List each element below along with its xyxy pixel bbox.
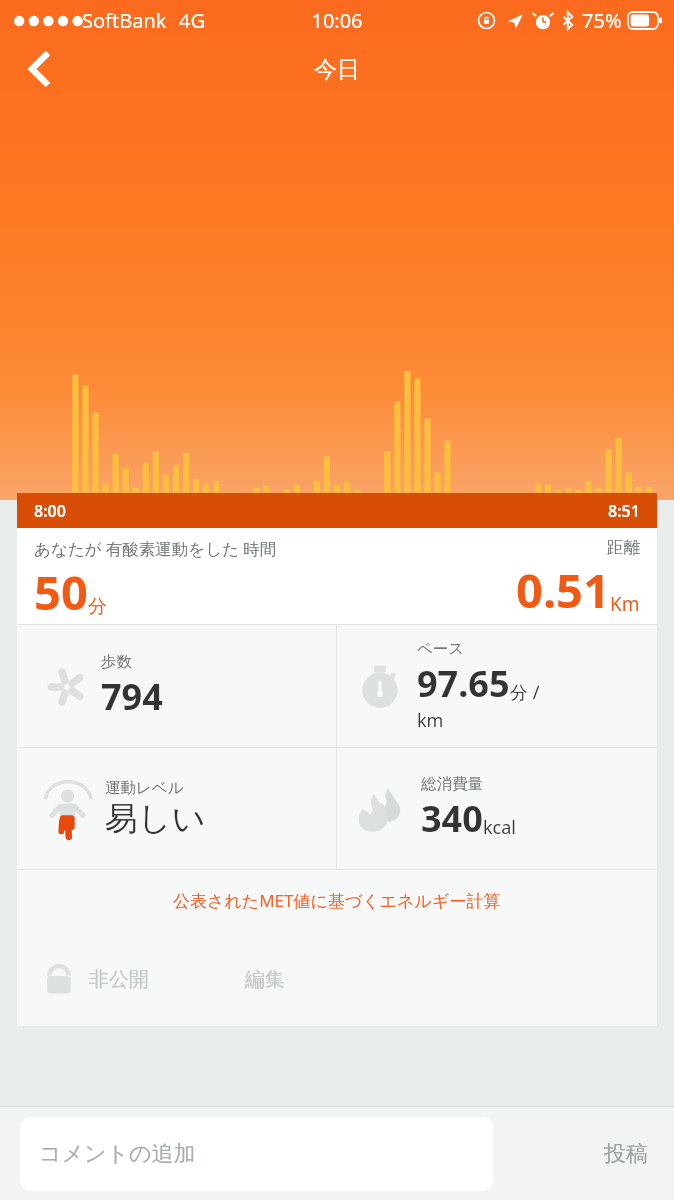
staticText: 投稿 (604, 1140, 648, 1168)
staticText: 8:00 (34, 500, 66, 522)
staticText: 0.51 (516, 558, 610, 622)
staticText: 距離 (607, 537, 640, 558)
staticText: ペース (417, 639, 465, 659)
button[interactable]: 総消費量 (337, 748, 657, 869)
staticText: 4G (179, 7, 205, 34)
staticText: km (417, 708, 444, 733)
staticText: 歩数 (101, 652, 132, 672)
staticText: 97.65 (417, 659, 510, 708)
staticText: 50 (34, 560, 88, 624)
staticText: 公表されたMET値に基づくエネルギー計算 (173, 889, 501, 912)
staticText: Km (610, 591, 640, 617)
staticText: 340 (421, 794, 483, 843)
button[interactable]: 運動レベル (17, 748, 336, 869)
button[interactable]: 公表されたMET値に基づくエネルギー計算 (17, 870, 657, 930)
button[interactable]: Back (12, 42, 66, 96)
button[interactable]: 編集 (245, 967, 285, 992)
staticText: SoftBank (82, 7, 167, 34)
staticText: 794 (101, 672, 163, 721)
staticText: 8:51 (608, 500, 640, 522)
staticText: 75% (582, 7, 622, 34)
staticText: 易しい (105, 798, 206, 840)
button[interactable]: ペース (337, 625, 657, 747)
button[interactable]: 非公開 (40, 960, 149, 998)
button[interactable]: 投稿 (604, 1140, 648, 1168)
staticText: 今日 (314, 55, 360, 84)
staticText: kcal (483, 815, 516, 840)
staticText: あなたが 有酸素運動をした 時間 (34, 537, 277, 560)
staticText: 運動レベル (105, 778, 184, 798)
button[interactable]: コメントの追加 (20, 1117, 493, 1191)
staticText: 総消費量 (421, 774, 483, 794)
staticText: 10:06 (311, 7, 363, 34)
staticText: 編集 (245, 967, 285, 992)
staticText: 非公開 (89, 967, 149, 992)
staticText: コメントの追加 (39, 1140, 196, 1168)
staticText: 分 (88, 595, 107, 619)
staticText: 分 / (510, 680, 540, 705)
button[interactable]: 歩数 (17, 625, 336, 747)
